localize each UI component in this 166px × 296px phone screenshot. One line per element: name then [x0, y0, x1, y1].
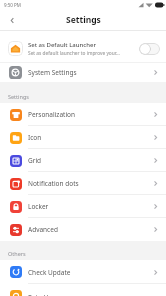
button[interactable]: Personalization [0, 103, 166, 126]
staticText: Rate Us [28, 293, 52, 296]
button[interactable]: Icon [0, 126, 166, 149]
staticText: Locker [28, 202, 49, 211]
staticText: Personalization [28, 110, 76, 119]
button[interactable]: Locker [0, 195, 166, 218]
button[interactable] [9, 17, 16, 24]
staticText: System Settings [28, 68, 77, 77]
staticText: Check Update [28, 268, 71, 277]
button[interactable]: Grid [0, 149, 166, 172]
staticText: 9:50 PM [4, 2, 21, 8]
button[interactable]: Advanced [0, 218, 166, 241]
button[interactable]: System Settings [0, 63, 166, 82]
staticText: Others [8, 250, 26, 257]
button[interactable]: Set as Default Launcher [0, 31, 166, 62]
staticText: Advanced [28, 225, 58, 234]
staticText: Settings [66, 14, 101, 26]
staticText: Set as default launcher to improve your.… [28, 50, 120, 57]
staticText: Settings [8, 93, 29, 100]
staticText: Notification dots [28, 179, 79, 188]
button[interactable]: Notification dots [0, 172, 166, 195]
staticText: Grid [28, 156, 42, 165]
staticText: Set as Default Launcher [28, 41, 97, 49]
button[interactable]: Rate Us [0, 284, 166, 296]
button[interactable] [139, 43, 160, 55]
staticText: Icon [28, 133, 42, 142]
button[interactable]: Check Update [0, 260, 166, 284]
